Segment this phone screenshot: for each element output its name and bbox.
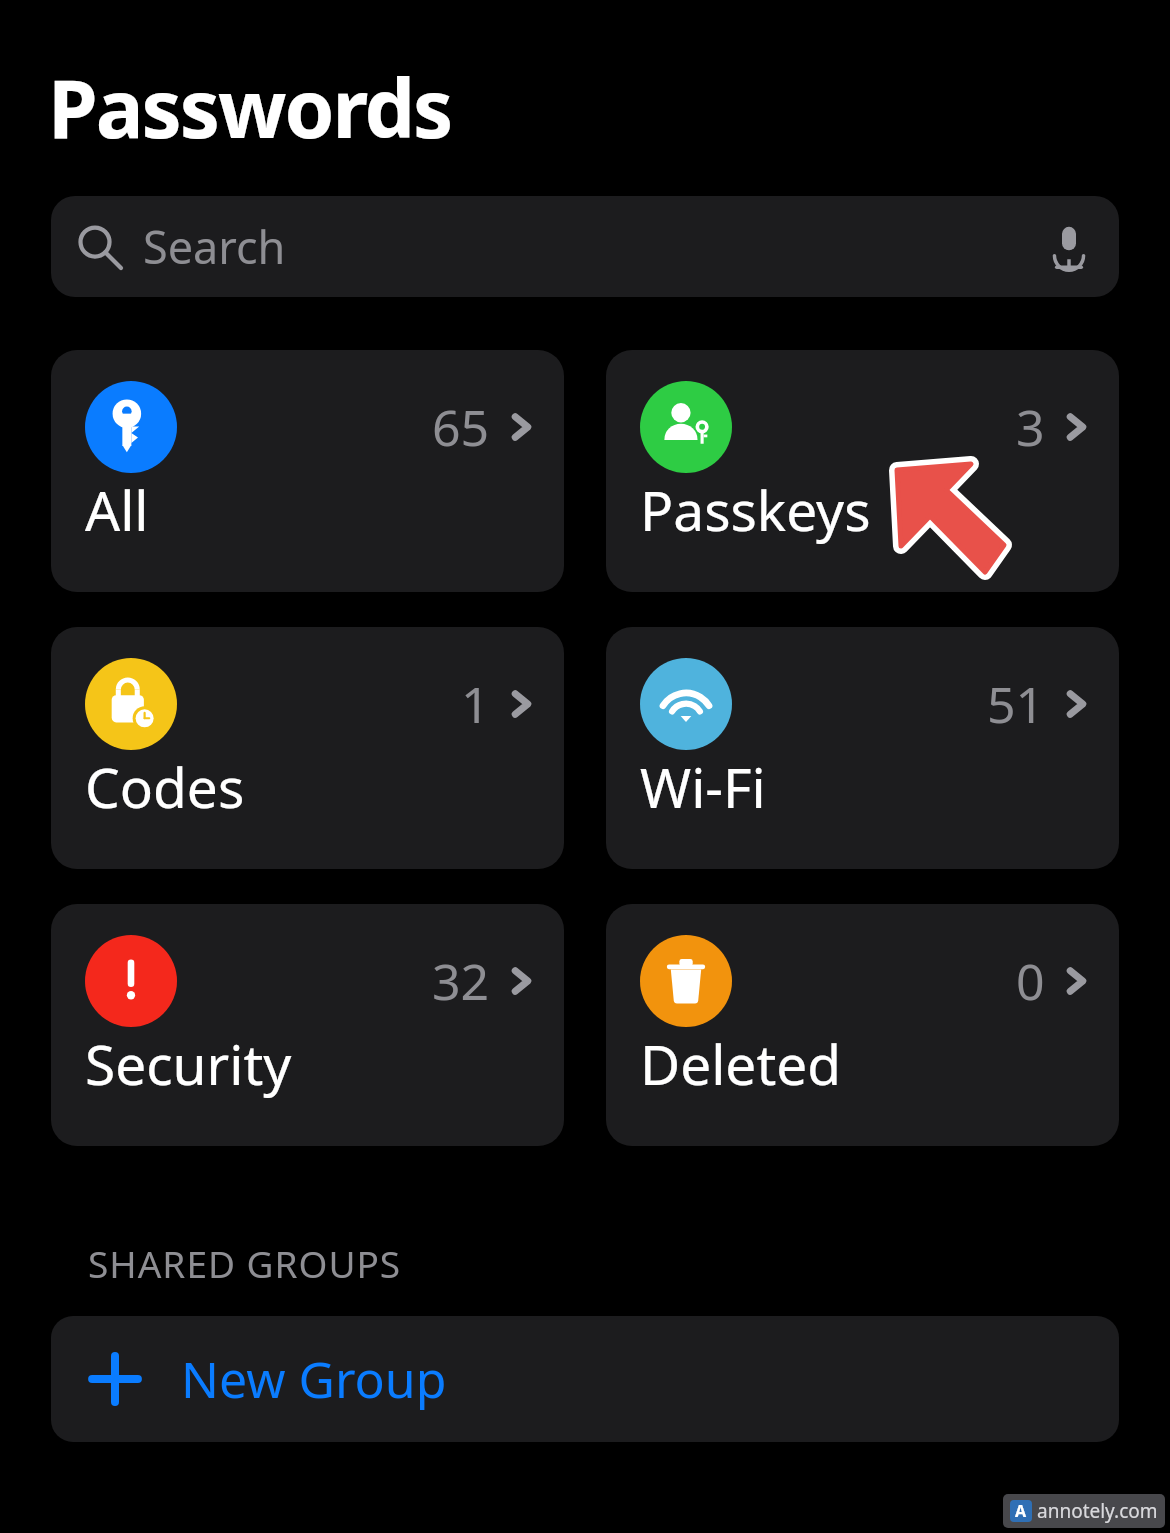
staticText: SHARED GROUPS xyxy=(88,1238,402,1288)
staticText: 1 xyxy=(461,670,490,738)
staticText: 32 xyxy=(432,947,490,1015)
button[interactable]: 3 xyxy=(606,350,1119,592)
staticText: Security xyxy=(85,1026,292,1101)
staticText: 51 xyxy=(987,670,1045,738)
button[interactable]: 51 xyxy=(606,627,1119,869)
staticText: All xyxy=(85,472,149,547)
button[interactable]: New Group xyxy=(51,1316,1119,1442)
staticText: Passwords xyxy=(48,52,452,161)
staticText: 3 xyxy=(1016,393,1045,461)
staticText: Wi-Fi xyxy=(640,749,766,824)
staticText: annotely.com xyxy=(1037,1498,1158,1524)
staticText: 65 xyxy=(432,393,490,461)
staticText: Passkeys xyxy=(640,472,871,547)
staticText: New Group xyxy=(181,1345,447,1413)
staticText: Search xyxy=(143,216,286,277)
button[interactable]: 65 xyxy=(51,350,564,592)
button[interactable]: 0 xyxy=(606,904,1119,1146)
button[interactable]: Search xyxy=(51,196,1119,297)
staticText: Deleted xyxy=(640,1026,842,1101)
button[interactable]: Voice search xyxy=(1041,219,1097,275)
button[interactable]: 32 xyxy=(51,904,564,1146)
staticText: 0 xyxy=(1016,947,1045,1015)
button[interactable]: 1 xyxy=(51,627,564,869)
staticText: A xyxy=(1015,1500,1027,1522)
staticText: Codes xyxy=(85,749,245,824)
